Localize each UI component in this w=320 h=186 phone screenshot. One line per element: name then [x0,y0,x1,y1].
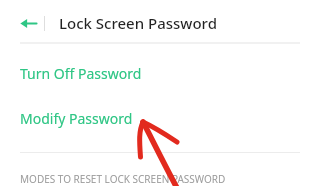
staticText: Modify Password [20,109,133,128]
button[interactable]: Turn Off Password [0,60,320,86]
button[interactable]: Modify Password [0,105,320,131]
staticText: Lock Screen Password [59,13,217,33]
staticText: MODES TO RESET LOCK SCREEN PASSWORD [20,172,226,186]
staticText: Turn Off Password [20,64,142,83]
button[interactable]: Back [15,10,41,36]
